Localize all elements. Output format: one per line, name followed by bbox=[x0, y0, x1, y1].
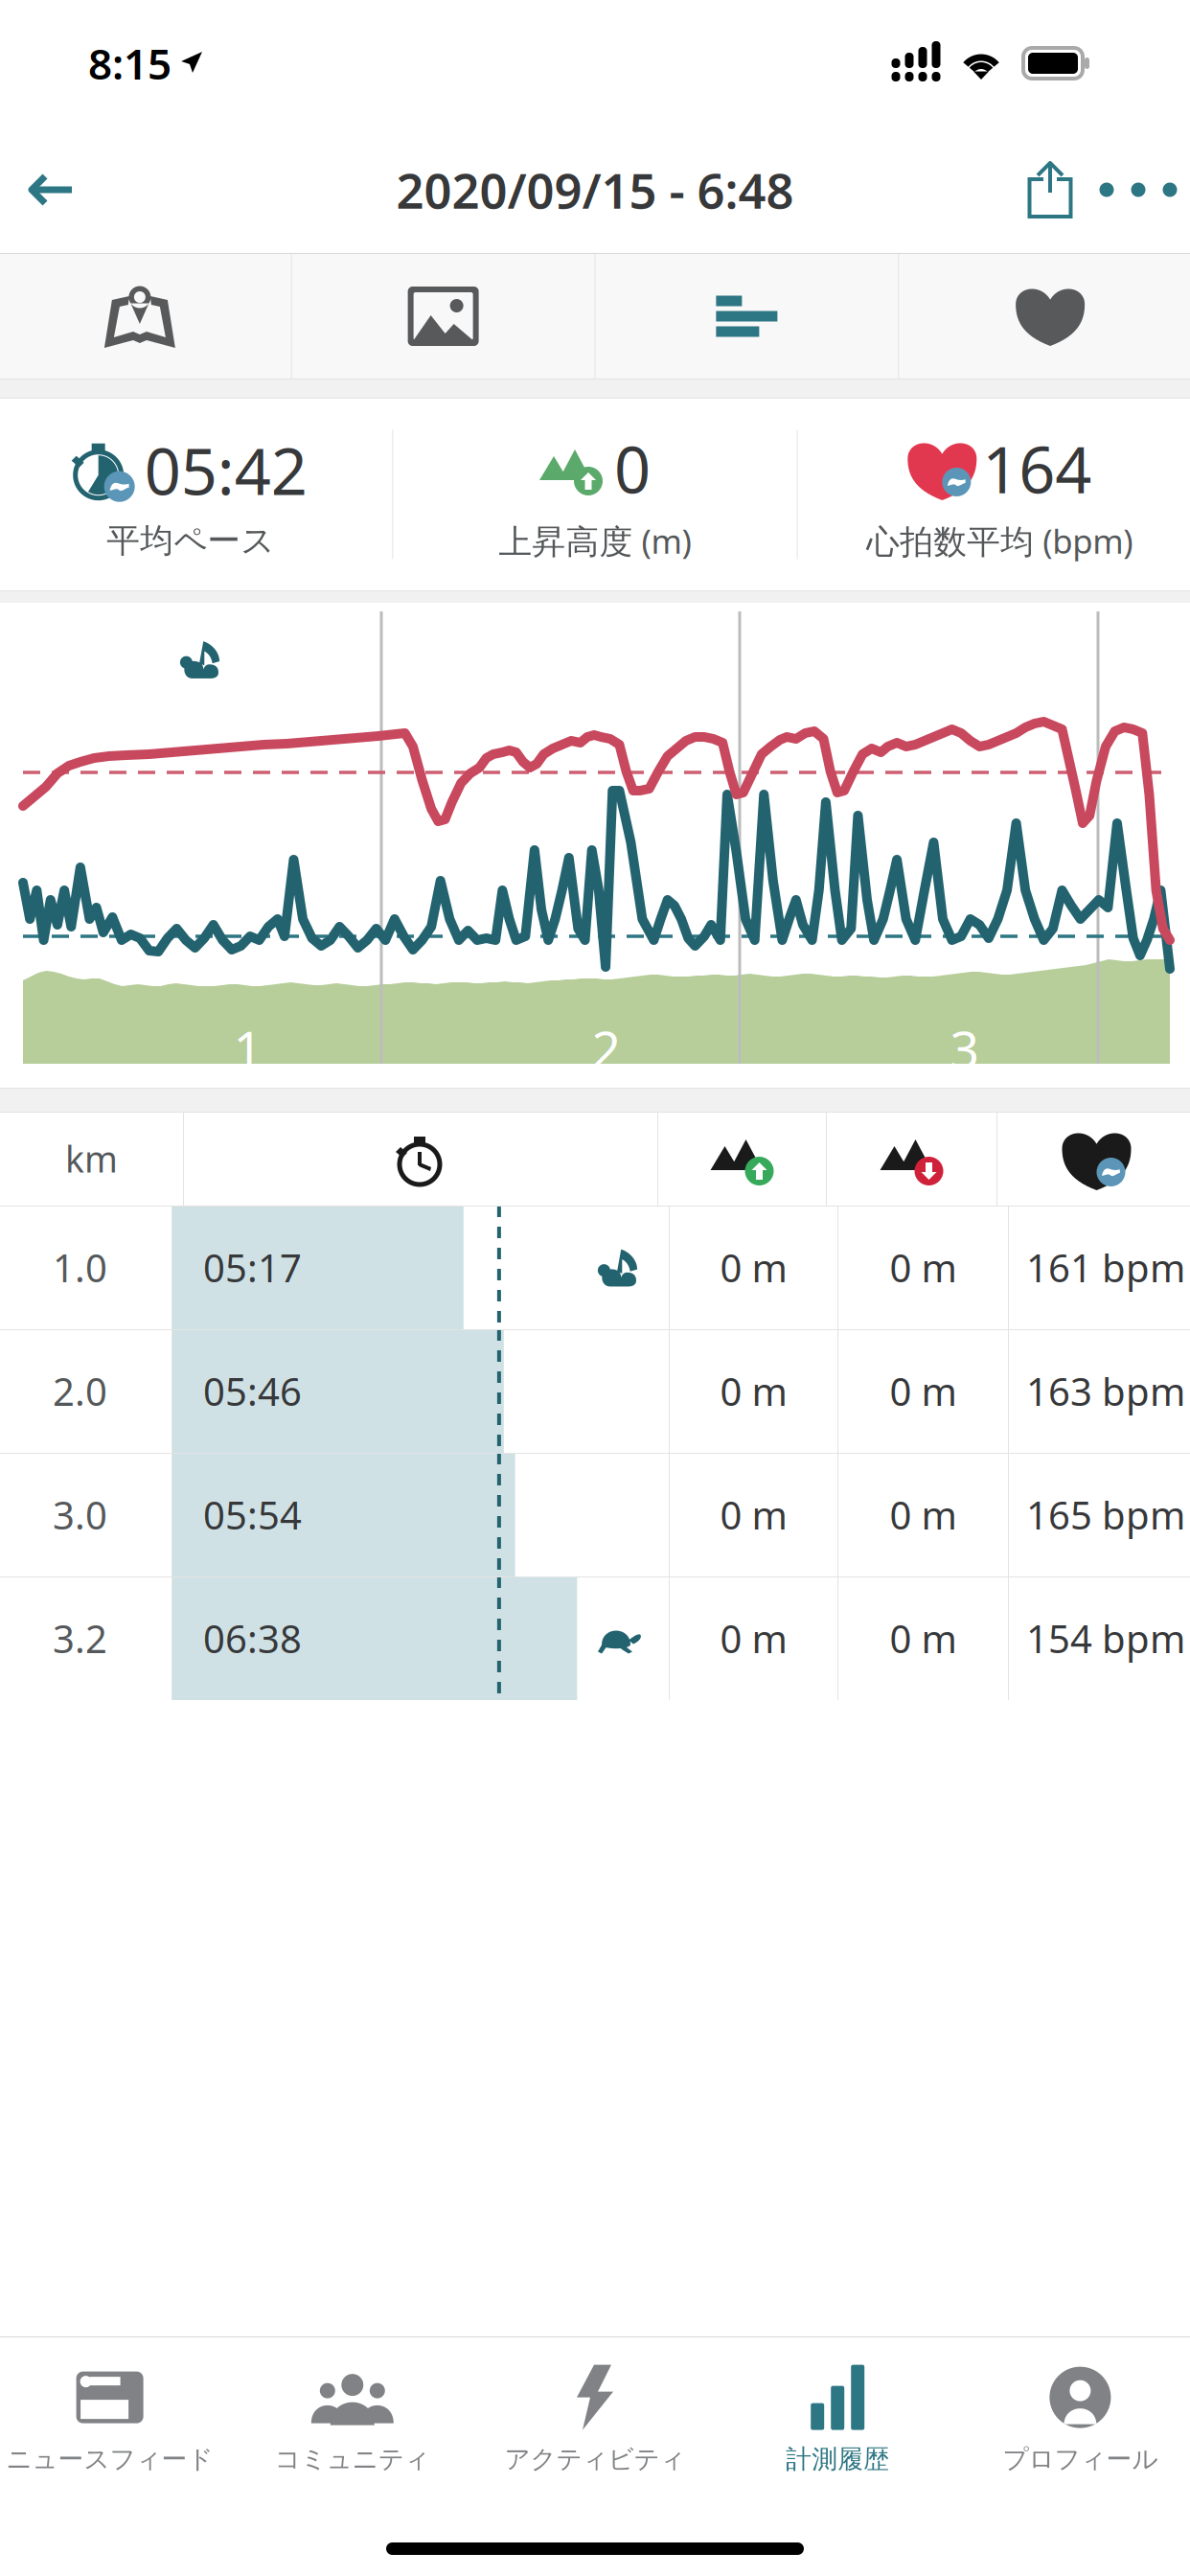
button[interactable]: Share bbox=[1008, 142, 1092, 238]
button[interactable]: Back bbox=[9, 142, 93, 238]
staticText: 心拍数平均 (bpm) bbox=[866, 519, 1133, 563]
staticText: 161 bpm bbox=[1026, 1242, 1185, 1293]
staticText: アクティビティ bbox=[504, 2443, 686, 2475]
staticText: 0 m bbox=[720, 1242, 787, 1293]
staticText: 平均ペース bbox=[107, 520, 274, 561]
button[interactable]: 3.0 bbox=[0, 1453, 1190, 1576]
button[interactable]: 1.0 bbox=[0, 1206, 1190, 1329]
button[interactable]: プロフィール bbox=[959, 2342, 1190, 2571]
button[interactable]: ニュースフィード bbox=[0, 2342, 231, 2571]
button[interactable]: 3.2 bbox=[0, 1576, 1190, 1700]
button[interactable]: コミュニティ bbox=[231, 2342, 474, 2571]
staticText: 0 m bbox=[890, 1613, 957, 1664]
staticText: 3.2 bbox=[53, 1613, 107, 1664]
staticText: km bbox=[65, 1135, 118, 1182]
button[interactable]: アクティビティ bbox=[474, 2342, 716, 2571]
staticText: 3.0 bbox=[53, 1489, 107, 1540]
staticText: 2 bbox=[592, 1014, 621, 1082]
staticText: 8:15 bbox=[88, 35, 172, 91]
staticText: 0 m bbox=[890, 1242, 957, 1293]
staticText: ニュースフィード bbox=[6, 2443, 213, 2475]
staticText: 154 bpm bbox=[1026, 1613, 1185, 1664]
button[interactable]: 計測履歴 bbox=[716, 2342, 959, 2571]
staticText: 0 m bbox=[720, 1366, 787, 1416]
staticText: 1 bbox=[233, 1014, 263, 1082]
staticText: 165 bpm bbox=[1026, 1489, 1185, 1540]
button[interactable]: Photos bbox=[292, 253, 595, 379]
staticText: 3 bbox=[950, 1014, 980, 1082]
staticText: 05:46 bbox=[203, 1366, 302, 1416]
button[interactable]: Graphs bbox=[595, 253, 898, 379]
staticText: 1.0 bbox=[53, 1242, 107, 1293]
staticText: 06:38 bbox=[203, 1613, 302, 1664]
staticText: 0 m bbox=[890, 1366, 957, 1416]
staticText: 163 bpm bbox=[1026, 1366, 1185, 1416]
button[interactable]: Heart rate bbox=[899, 253, 1190, 379]
staticText: 2.0 bbox=[53, 1366, 107, 1416]
staticText: 0 m bbox=[720, 1489, 787, 1540]
staticText: 05:42 bbox=[144, 428, 307, 513]
staticText: 0 bbox=[614, 426, 651, 511]
button[interactable]: 2.0 bbox=[0, 1329, 1190, 1453]
button[interactable]: Map bbox=[0, 253, 291, 379]
button[interactable]: More bbox=[1092, 142, 1184, 238]
staticText: 05:17 bbox=[203, 1242, 302, 1293]
staticText: 計測履歴 bbox=[786, 2443, 889, 2475]
staticText: 164 bbox=[982, 426, 1092, 511]
staticText: 05:54 bbox=[203, 1489, 302, 1540]
staticText: 上昇高度 (m) bbox=[499, 519, 691, 563]
staticText: 2020/09/15 - 6:48 bbox=[396, 158, 794, 222]
staticText: 0 m bbox=[890, 1489, 957, 1540]
staticText: プロフィール bbox=[1003, 2443, 1158, 2475]
staticText: 0 m bbox=[720, 1613, 787, 1664]
staticText: コミュニティ bbox=[275, 2443, 430, 2475]
